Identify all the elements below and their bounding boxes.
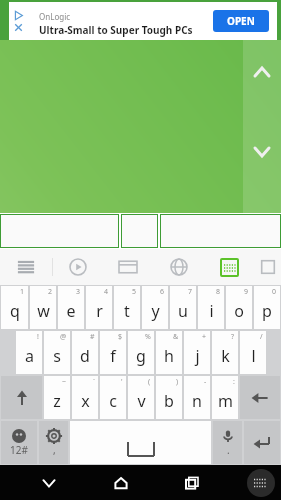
button[interactable]: 8	[198, 286, 224, 329]
staticText: k	[221, 345, 230, 367]
button[interactable]: Clipboard	[103, 249, 153, 285]
staticText: &	[173, 332, 179, 342]
staticText: e	[66, 300, 76, 322]
staticText: w	[37, 300, 50, 322]
staticText: m	[218, 390, 233, 412]
button[interactable]: ?	[212, 331, 238, 374]
staticText: %	[145, 332, 151, 342]
staticText: OnLogic	[39, 11, 71, 22]
staticText: x	[81, 390, 90, 412]
staticText: #	[90, 332, 95, 342]
button[interactable]: -	[184, 376, 210, 419]
button[interactable]: 4	[86, 286, 112, 329]
staticText: :	[233, 377, 235, 387]
staticText: q	[10, 300, 20, 322]
button[interactable]	[160, 214, 281, 248]
staticText: ~	[62, 377, 67, 387]
staticText: 6	[160, 287, 165, 297]
button[interactable]: Enter	[244, 421, 280, 464]
staticText: )	[176, 377, 179, 387]
button[interactable]: Settings	[39, 421, 68, 464]
staticText: c	[109, 390, 117, 412]
button[interactable]: 6	[142, 286, 168, 329]
button[interactable]	[121, 214, 158, 248]
staticText: 4	[104, 287, 109, 297]
button[interactable]: More	[255, 249, 281, 285]
button[interactable]: #	[72, 331, 98, 374]
staticText: t	[124, 300, 130, 322]
button[interactable]: '	[100, 376, 126, 419]
button[interactable]: 0	[254, 286, 280, 329]
staticText: 0	[272, 287, 277, 297]
button[interactable]: Symbols	[1, 421, 37, 464]
button[interactable]: 7	[170, 286, 196, 329]
button[interactable]: Translate	[153, 249, 204, 285]
staticText: 1	[20, 287, 25, 297]
staticText: g	[136, 345, 146, 367]
staticText: @	[60, 332, 67, 342]
button[interactable]: :	[212, 376, 238, 419]
other: Scroll down	[255, 148, 269, 156]
button[interactable]: /	[240, 331, 266, 374]
button[interactable]: ~	[44, 376, 70, 419]
staticText: v	[137, 390, 146, 412]
button[interactable]: 1	[1, 286, 28, 329]
button[interactable]: (	[128, 376, 154, 419]
staticText: r	[96, 300, 103, 322]
button[interactable]: %	[128, 331, 154, 374]
button[interactable]: 5	[114, 286, 140, 329]
staticText: 9	[244, 287, 249, 297]
button[interactable]: &	[156, 331, 182, 374]
staticText: '	[121, 377, 123, 387]
button[interactable]: 9	[226, 286, 252, 329]
staticText: s	[53, 345, 61, 367]
button[interactable]: 3	[58, 286, 84, 329]
staticText: j	[195, 345, 200, 367]
staticText: OPEN	[227, 14, 255, 28]
staticText: z	[53, 390, 61, 412]
staticText: o	[234, 300, 244, 322]
button[interactable]: Switch keyboard	[247, 469, 275, 497]
staticText: y	[151, 300, 160, 322]
button[interactable]: !	[16, 331, 42, 374]
staticText: Ultra-Small to Super Tough PCs	[39, 23, 193, 37]
staticText: h	[164, 345, 174, 367]
staticText: u	[178, 300, 188, 322]
staticText: 8	[216, 287, 221, 297]
button[interactable]: @	[44, 331, 70, 374]
staticText: 7	[188, 287, 193, 297]
staticText: ?	[231, 332, 235, 342]
staticText: n	[192, 390, 202, 412]
button[interactable]: $	[100, 331, 126, 374]
button[interactable]: Back	[27, 465, 71, 500]
button[interactable]: Play	[53, 249, 103, 285]
staticText: !	[37, 332, 39, 342]
staticText: 2	[48, 287, 53, 297]
staticText: p	[262, 300, 272, 322]
staticText: l	[251, 345, 256, 367]
staticText: /	[260, 332, 263, 342]
staticText: f	[110, 345, 116, 367]
button[interactable]: Voice input	[213, 421, 242, 464]
button[interactable]: Home	[99, 465, 143, 500]
button[interactable]: Backspace	[240, 376, 280, 419]
staticText: $	[118, 332, 123, 342]
staticText: -	[204, 377, 207, 387]
staticText: a	[25, 345, 34, 367]
button[interactable]: Space	[70, 421, 211, 464]
button[interactable]: `	[72, 376, 98, 419]
staticText: .	[227, 443, 230, 457]
button[interactable]: Menu	[0, 249, 52, 285]
staticText: 12#	[10, 443, 28, 457]
button[interactable]: OPEN	[213, 10, 269, 32]
button[interactable]	[0, 214, 119, 248]
button[interactable]: Recents	[170, 465, 214, 500]
staticText: `	[93, 377, 95, 387]
button[interactable]: Shift	[1, 376, 42, 419]
staticText: i	[209, 300, 214, 322]
button[interactable]: Keyboard layout	[204, 249, 255, 285]
staticText: 5	[132, 287, 137, 297]
button[interactable]: )	[156, 376, 182, 419]
button[interactable]: +	[184, 331, 210, 374]
button[interactable]: 2	[30, 286, 56, 329]
